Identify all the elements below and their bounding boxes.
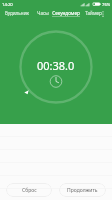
staticText: Сброс [22,187,37,194]
button[interactable]: Продолжить [59,183,106,197]
staticText: 14:20 [2,2,13,8]
button[interactable]: Таймер [80,7,107,19]
button[interactable]: More options [98,8,107,19]
staticText: 00:38.0 [37,58,75,73]
staticText: Таймер [85,10,102,16]
staticText: Продолжить [67,187,98,194]
button[interactable]: Будильник [0,7,33,19]
staticText: Будильник [5,10,29,16]
staticText: Часы [37,10,49,16]
button[interactable]: Часы [33,7,52,19]
button[interactable] [0,189,112,200]
button[interactable]: Секундомер [52,7,80,19]
staticText: 76% [102,2,111,8]
button[interactable]: Сброс [6,183,52,197]
button[interactable] [0,176,112,189]
staticText: Секундомер [52,10,80,16]
